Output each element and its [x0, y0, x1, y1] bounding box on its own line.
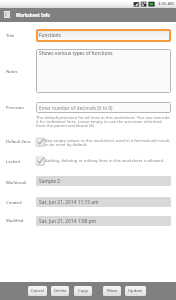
- button[interactable]: Default Zero: [36, 138, 45, 147]
- staticText: Modified: [6, 218, 24, 224]
- staticText: The default precision for all lines in t…: [36, 115, 170, 129]
- staticText: Notes: [6, 69, 18, 75]
- button[interactable]: Locked: [36, 157, 45, 166]
- other: Worksheet: [4, 11, 10, 18]
- staticText: Sat, Jun 21, 2014 1:08 pm: [39, 218, 97, 225]
- staticText: Title: [6, 33, 15, 39]
- staticText: Delete: [54, 288, 67, 294]
- staticText: Functions: [39, 32, 61, 39]
- staticText: Worksheet Info: [16, 12, 50, 18]
- staticText: Update: [128, 288, 143, 294]
- staticText: Cancel: [31, 288, 45, 294]
- button[interactable]: Update: [125, 286, 146, 296]
- button[interactable]: Functions: [36, 29, 171, 42]
- button[interactable]: Sat, Jun 21, 2014 11:15 am: [36, 197, 171, 207]
- staticText: Adding, deleting or editing lines in thi…: [45, 158, 165, 164]
- button[interactable]: Enter number of decimals (0 to 9): [36, 102, 171, 113]
- button[interactable]: Sat, Jun 21, 2014 1:08 pm: [36, 216, 171, 226]
- button[interactable]: Cancel: [28, 286, 47, 296]
- staticText: Locked: [6, 159, 20, 165]
- staticText: Sample 2: [39, 178, 60, 185]
- staticText: Any empty values in this worksheet used …: [45, 138, 173, 148]
- button[interactable]: Copy: [74, 286, 92, 296]
- button[interactable]: Delete: [51, 286, 69, 296]
- staticText: 4:06 AM: [158, 1, 174, 7]
- staticText: Move: [107, 288, 118, 294]
- button[interactable]: Shows various types of functions: [36, 49, 171, 93]
- staticText: Shows various types of functions: [39, 50, 113, 57]
- staticText: Copy: [78, 288, 88, 294]
- button[interactable]: Move: [103, 286, 121, 296]
- button[interactable]: Sample 2: [36, 176, 171, 186]
- staticText: Sat, Jun 21, 2014 11:15 am: [39, 199, 99, 206]
- staticText: Created: [6, 200, 22, 206]
- staticText: Enter number of decimals (0 to 9): [39, 105, 113, 111]
- staticText: Precision: [6, 105, 24, 111]
- staticText: Default Zero: [6, 139, 31, 145]
- staticText: Workbook: [6, 180, 27, 186]
